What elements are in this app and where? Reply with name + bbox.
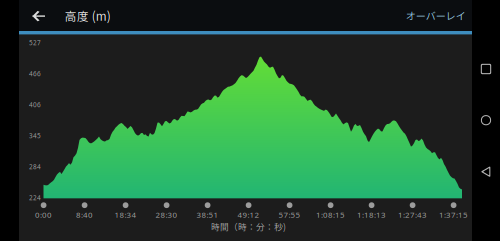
button[interactable]: Home	[475, 109, 497, 131]
staticText: 0:00	[35, 209, 52, 220]
staticText: 466	[29, 69, 41, 78]
staticText: 28:30	[156, 209, 178, 220]
staticText: 406	[29, 100, 41, 109]
button[interactable]: オーバーレイ	[406, 8, 466, 23]
staticText: 1:37:15	[439, 209, 468, 220]
staticText: 224	[29, 193, 41, 202]
staticText: 高度 (m)	[65, 7, 111, 24]
staticText: 時間（時：分：秒)	[211, 220, 286, 233]
staticText: 38:51	[197, 209, 219, 220]
staticText: 8:40	[76, 209, 93, 220]
button[interactable]: Recent apps	[475, 58, 497, 80]
staticText: 18:34	[115, 209, 137, 220]
staticText: 527	[29, 38, 41, 47]
staticText: 57:55	[279, 209, 301, 220]
staticText: 1:08:15	[316, 209, 345, 220]
staticText: オーバーレイ	[406, 8, 466, 23]
staticText: 1:27:43	[398, 209, 427, 220]
staticText: 284	[29, 162, 41, 171]
button[interactable]: Back	[475, 161, 497, 183]
staticText: 49:12	[238, 209, 260, 220]
button[interactable]: Back	[26, 3, 52, 29]
staticText: 345	[29, 131, 41, 140]
staticText: 1:18:13	[357, 209, 386, 220]
